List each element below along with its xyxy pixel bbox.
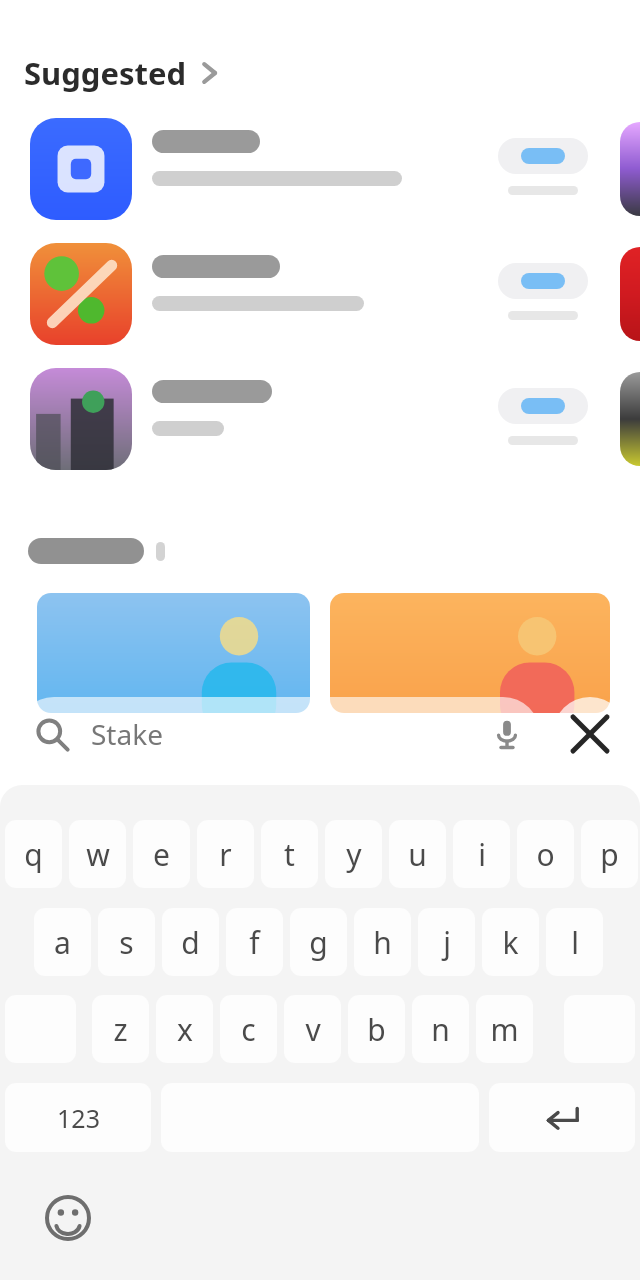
button[interactable]: f	[226, 908, 283, 976]
staticText: m	[490, 1009, 519, 1050]
button[interactable]: y	[325, 820, 382, 888]
button[interactable]: x	[156, 995, 213, 1063]
button[interactable]: Voice search	[480, 707, 534, 761]
staticText: p	[600, 834, 619, 875]
button[interactable]: w	[69, 820, 126, 888]
button[interactable]: 123	[5, 1083, 151, 1152]
staticText: h	[373, 922, 392, 963]
staticText: j	[443, 922, 451, 963]
button[interactable]	[330, 593, 610, 713]
button[interactable]: z	[92, 995, 149, 1063]
button[interactable]: Stake	[17, 697, 540, 771]
button[interactable]: p	[581, 820, 638, 888]
button[interactable]: g	[290, 908, 347, 976]
staticText: Suggested	[24, 52, 187, 94]
staticText: s	[119, 922, 134, 963]
staticText: c	[241, 1009, 256, 1050]
staticText: Stake	[91, 715, 163, 753]
staticText: y	[346, 834, 362, 875]
staticText: t	[284, 834, 295, 875]
staticText: v	[305, 1009, 321, 1050]
button[interactable]: Enter	[489, 1083, 635, 1152]
staticText: e	[153, 834, 170, 875]
button[interactable]: e	[133, 820, 190, 888]
button[interactable]: q	[5, 820, 62, 888]
button[interactable]	[37, 593, 310, 713]
staticText: z	[113, 1009, 128, 1050]
button[interactable]: d	[162, 908, 219, 976]
staticText: q	[24, 834, 43, 875]
staticText: 123	[57, 1101, 100, 1135]
button[interactable]: Close search	[553, 697, 627, 771]
button[interactable]: Get	[498, 388, 588, 424]
staticText: g	[309, 922, 328, 963]
button[interactable]: m	[476, 995, 533, 1063]
button[interactable]: i	[453, 820, 510, 888]
staticText: o	[536, 834, 555, 875]
button[interactable]: r	[197, 820, 254, 888]
button[interactable]: u	[389, 820, 446, 888]
staticText: n	[431, 1009, 450, 1050]
button[interactable]: k	[482, 908, 539, 976]
button[interactable]: l	[546, 908, 603, 976]
staticText: f	[249, 922, 260, 963]
staticText: l	[571, 922, 579, 963]
button[interactable]: Emoji	[42, 1192, 94, 1244]
button[interactable]: Get	[498, 138, 588, 174]
button[interactable]: t	[261, 820, 318, 888]
button[interactable]: o	[517, 820, 574, 888]
button[interactable]: s	[98, 908, 155, 976]
button[interactable]: Get	[498, 263, 588, 299]
staticText: a	[54, 922, 71, 963]
button[interactable]: b	[348, 995, 405, 1063]
staticText: r	[219, 834, 232, 875]
button[interactable]: a	[34, 908, 91, 976]
staticText: u	[408, 834, 427, 875]
staticText: k	[502, 922, 519, 963]
button[interactable]: j	[418, 908, 475, 976]
button[interactable]: h	[354, 908, 411, 976]
button[interactable]: c	[220, 995, 277, 1063]
staticText: b	[367, 1009, 386, 1050]
staticText: w	[86, 834, 110, 875]
staticText: x	[177, 1009, 193, 1050]
staticText: i	[478, 834, 486, 875]
button[interactable]: v	[284, 995, 341, 1063]
staticText: d	[181, 922, 200, 963]
button[interactable]: n	[412, 995, 469, 1063]
